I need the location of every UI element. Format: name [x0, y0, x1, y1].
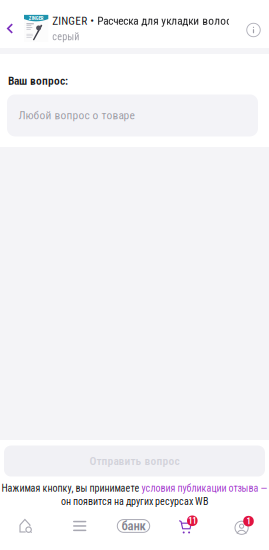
staticText: серый: [52, 31, 79, 43]
button[interactable]: Bank: [107, 507, 160, 544]
staticText: 1: [246, 516, 250, 526]
staticText: ZINGER: [29, 16, 44, 21]
button[interactable]: Catalog: [53, 507, 107, 544]
button[interactable]: Cart: [160, 507, 214, 544]
button[interactable]: Home: [0, 507, 53, 544]
button[interactable]: Profile: [214, 507, 268, 544]
button[interactable]: Back: [0, 4, 16, 52]
staticText: банк: [121, 518, 145, 533]
staticText: он появится на других ресурсах WB: [61, 496, 208, 507]
staticText: ZINGER • Расческа для укладки волос ма: [52, 14, 246, 28]
staticText: Нажимая кнопку, вы принимаете: [1, 482, 141, 494]
button[interactable]: Information: [241, 3, 269, 54]
staticText: Ваш вопрос:: [8, 74, 68, 87]
button[interactable]: Отправить вопрос: [0, 445, 269, 476]
staticText: Любой вопрос о товаре: [18, 109, 134, 122]
staticText: условия публикации отзыва —: [141, 482, 267, 494]
staticText: 11: [188, 516, 196, 526]
staticText: Отправить вопрос: [89, 454, 179, 468]
